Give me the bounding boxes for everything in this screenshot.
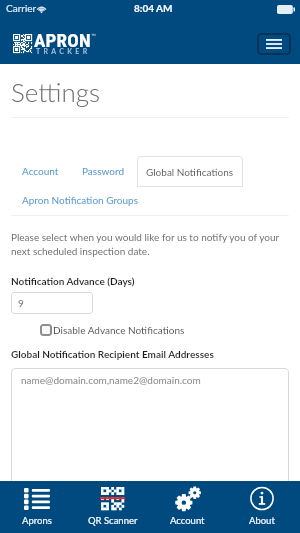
- staticText: Carrier: [6, 2, 37, 14]
- staticText: About: [249, 515, 275, 526]
- button[interactable]: Account: [22, 165, 59, 177]
- staticText: Global Notifications: [146, 166, 234, 178]
- button[interactable]: Disable Advance Notifications: [40, 324, 185, 336]
- staticText: APRON: [34, 29, 91, 51]
- button[interactable]: Apron Notification Groups: [22, 194, 139, 206]
- staticText: TRACKER: [36, 47, 91, 55]
- button[interactable]: Menu: [257, 33, 291, 55]
- staticText: 9: [18, 297, 24, 309]
- staticText: Disable Advance Notifications: [53, 324, 185, 336]
- button[interactable]: About: [229, 481, 294, 533]
- staticText: Account: [170, 515, 205, 526]
- button[interactable]: Account: [155, 481, 220, 533]
- staticText: QR Scanner: [88, 515, 138, 526]
- staticText: Please select when you would like for us…: [11, 231, 280, 243]
- staticText: Aprons: [22, 515, 52, 526]
- button[interactable]: Password: [82, 165, 124, 177]
- staticText: next scheduled inspection date.: [11, 245, 150, 257]
- button[interactable]: Aprons: [4, 481, 69, 533]
- staticText: 8:04 AM: [134, 2, 173, 14]
- button[interactable]: name@domain.com,name2@domain.com: [11, 368, 289, 498]
- button[interactable]: Global Notifications: [137, 156, 243, 187]
- staticText: Notification Advance (Days): [11, 275, 135, 287]
- staticText: ™: [91, 32, 96, 39]
- button[interactable]: 9: [11, 292, 93, 314]
- staticText: name@domain.com,name2@domain.com: [21, 374, 201, 386]
- staticText: Global Notification Recipient Email Addr…: [11, 348, 214, 360]
- button[interactable]: QR Scanner: [80, 481, 145, 533]
- staticText: Settings: [11, 76, 101, 107]
